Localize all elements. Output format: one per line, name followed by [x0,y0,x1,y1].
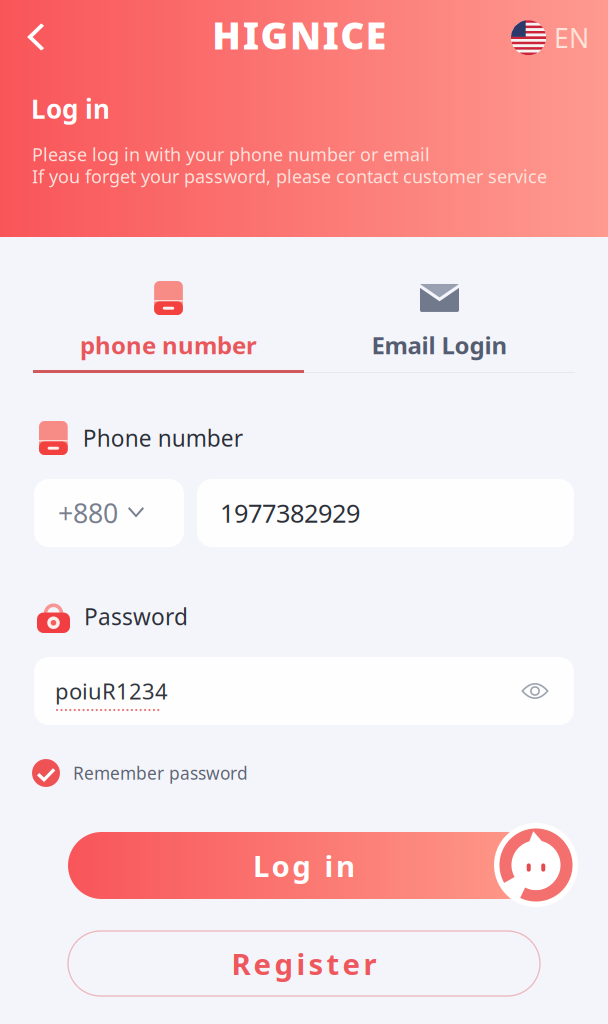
button[interactable]: Show password [513,669,557,713]
button[interactable]: Back [9,10,63,64]
button[interactable]: Remember password [32,751,248,795]
staticText: Password [84,601,188,631]
staticText: Phone number [83,423,243,453]
staticText: HIGNICE [212,10,386,60]
staticText: poiuR1234 [55,676,168,706]
staticText: phone number [80,329,257,361]
button[interactable]: Register [68,931,540,996]
staticText: Register [231,943,376,983]
button[interactable]: +880 [34,479,184,547]
button[interactable]: EN [511,12,589,63]
button[interactable]: Email Login [304,281,575,385]
button[interactable]: Customer service [494,823,578,907]
button[interactable]: Log in [68,832,540,899]
staticText: Email Login [371,329,507,361]
staticText: EN [554,20,589,55]
button[interactable]: phone number [33,281,304,385]
staticText: 1977382929 [220,496,360,530]
staticText: Remember password [73,761,248,784]
staticText: Log in [253,845,355,885]
staticText: +880 [58,495,118,531]
staticText: Please log in with your phone number or … [32,142,430,166]
staticText: If you forget your password, please cont… [32,164,547,188]
staticText: Log in [31,91,110,126]
